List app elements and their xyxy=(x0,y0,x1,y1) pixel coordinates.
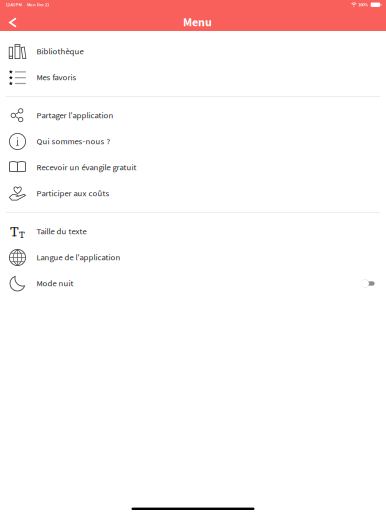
button[interactable]: Qui sommes-nous ? xyxy=(0,128,386,154)
staticText: 12:43 PM xyxy=(5,1,21,8)
button[interactable]: T xyxy=(0,218,386,244)
staticText: Mes favoris xyxy=(36,71,76,84)
staticText: Recevoir un évangile gratuit xyxy=(36,161,136,174)
staticText: Mon Dec 21 xyxy=(27,1,49,8)
staticText: Menu xyxy=(183,14,212,31)
staticText: Taille du texte xyxy=(36,225,86,238)
button[interactable]: Mes favoris xyxy=(0,64,386,90)
staticText: Qui sommes-nous ? xyxy=(36,135,110,148)
staticText: Bibliothèque xyxy=(36,45,83,58)
staticText: T xyxy=(10,222,19,241)
staticText: T xyxy=(19,229,25,241)
button[interactable]: Bibliothèque xyxy=(0,38,386,64)
button[interactable]: Langue de l'application xyxy=(0,244,386,270)
button[interactable]: Back xyxy=(0,14,27,30)
button[interactable]: Recevoir un évangile gratuit xyxy=(0,154,386,180)
staticText: Mode nuit xyxy=(36,277,73,290)
staticText: Participer aux coûts xyxy=(36,187,109,200)
button[interactable]: Partager l'application xyxy=(0,102,386,128)
staticText: 100% xyxy=(358,1,368,8)
button[interactable]: Mode nuit xyxy=(0,270,386,296)
button[interactable]: Participer aux coûts xyxy=(0,180,386,206)
staticText: Langue de l'application xyxy=(36,251,120,264)
staticText: Partager l'application xyxy=(36,109,113,122)
